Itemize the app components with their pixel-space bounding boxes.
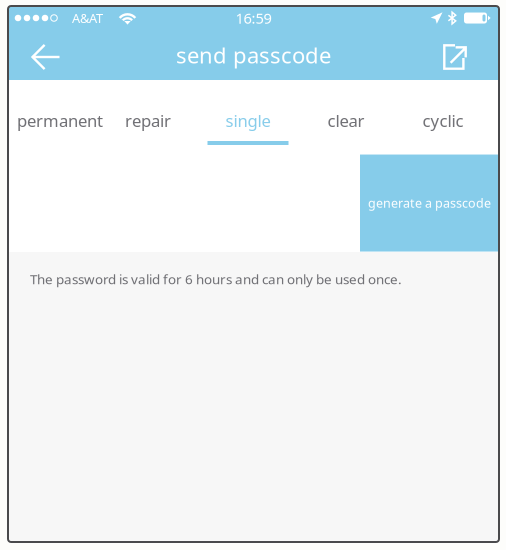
button[interactable]: clear — [302, 80, 394, 148]
button[interactable]: single — [198, 80, 302, 148]
staticText: A&AT — [72, 9, 103, 27]
staticText: 16:59 — [235, 8, 271, 28]
button[interactable]: Back — [21, 30, 71, 80]
staticText: generate a passcode — [368, 194, 491, 212]
button[interactable]: Share — [430, 30, 480, 80]
staticText: clear — [327, 109, 364, 132]
staticText: permanent — [17, 109, 103, 132]
button[interactable]: cyclic — [394, 80, 498, 148]
button[interactable]: permanent — [9, 80, 117, 148]
staticText: single — [225, 109, 270, 132]
button[interactable]: repair — [117, 80, 198, 148]
staticText: The password is valid for 6 hours and ca… — [30, 270, 402, 288]
staticText: cyclic — [422, 109, 463, 132]
button[interactable]: generate a passcode — [360, 154, 499, 251]
staticText: send passcode — [176, 40, 331, 70]
staticText: repair — [125, 109, 171, 132]
